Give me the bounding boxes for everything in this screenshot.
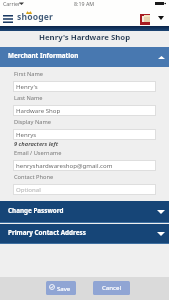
- button[interactable]: Merchant Information: [0, 47, 169, 67]
- staticText: Change Password: [8, 206, 64, 215]
- staticText: Optional: [16, 185, 41, 193]
- button[interactable]: Henrys: [13, 129, 156, 140]
- button[interactable]: henryshardwareshop@gmail.com: [13, 160, 156, 171]
- button[interactable]: Menu: [3, 15, 13, 23]
- staticText: Display Name: [14, 118, 51, 126]
- staticText: Henry's Hardware Shop: [39, 32, 131, 43]
- staticText: Cancel: [102, 283, 121, 291]
- staticText: Henrys: [16, 130, 37, 138]
- staticText: shooger: [17, 11, 54, 23]
- staticText: 8:19 AM: [74, 0, 95, 7]
- staticText: Primary Contact Address: [8, 228, 86, 237]
- button[interactable]: Optional: [13, 184, 156, 195]
- button[interactable]: Hardware Shop: [13, 105, 156, 116]
- staticText: First Name: [14, 70, 44, 78]
- staticText: Merchant Information: [8, 51, 79, 60]
- button[interactable]: Save: [46, 281, 76, 295]
- button[interactable]: Change Password: [0, 201, 169, 223]
- staticText: Save: [57, 284, 71, 292]
- staticText: Last Name: [14, 94, 43, 102]
- staticText: Henry's: [16, 82, 38, 90]
- button[interactable]: Select shop: [158, 16, 164, 20]
- button[interactable]: Cancel: [93, 281, 130, 295]
- staticText: Carrier: [3, 0, 21, 7]
- button[interactable]: Primary Contact Address: [0, 224, 169, 244]
- staticText: henryshardwareshop@gmail.com: [16, 161, 113, 169]
- button[interactable]: Henry's: [13, 81, 156, 92]
- staticText: Hardware Shop: [16, 106, 61, 114]
- staticText: 9 characters left: [14, 140, 58, 148]
- button[interactable]: Shop photo: [140, 14, 150, 25]
- staticText: Contact Phone: [14, 173, 54, 181]
- staticText: Email / Username: [14, 149, 62, 157]
